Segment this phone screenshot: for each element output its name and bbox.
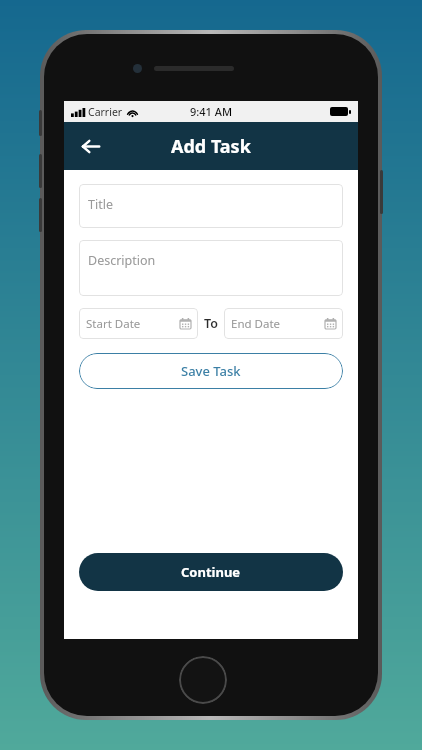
- button[interactable]: Start Date: [79, 308, 198, 339]
- staticText: Continue: [181, 563, 241, 581]
- staticText: 9:41 AM: [190, 104, 233, 119]
- staticText: Save Task: [181, 362, 241, 380]
- other: Home: [179, 656, 227, 704]
- staticText: Start Date: [86, 316, 141, 332]
- button[interactable]: Continue: [79, 553, 343, 591]
- staticText: Add Task: [171, 134, 251, 159]
- button[interactable]: Back: [72, 128, 108, 164]
- button[interactable]: Description: [79, 240, 343, 296]
- staticText: Title: [88, 196, 113, 213]
- staticText: Carrier: [88, 105, 123, 119]
- button[interactable]: Title: [79, 184, 343, 228]
- staticText: To: [204, 315, 218, 332]
- staticText: End Date: [231, 316, 281, 332]
- button[interactable]: End Date: [224, 308, 343, 339]
- button[interactable]: Save Task: [79, 353, 343, 389]
- staticText: Description: [88, 252, 156, 269]
